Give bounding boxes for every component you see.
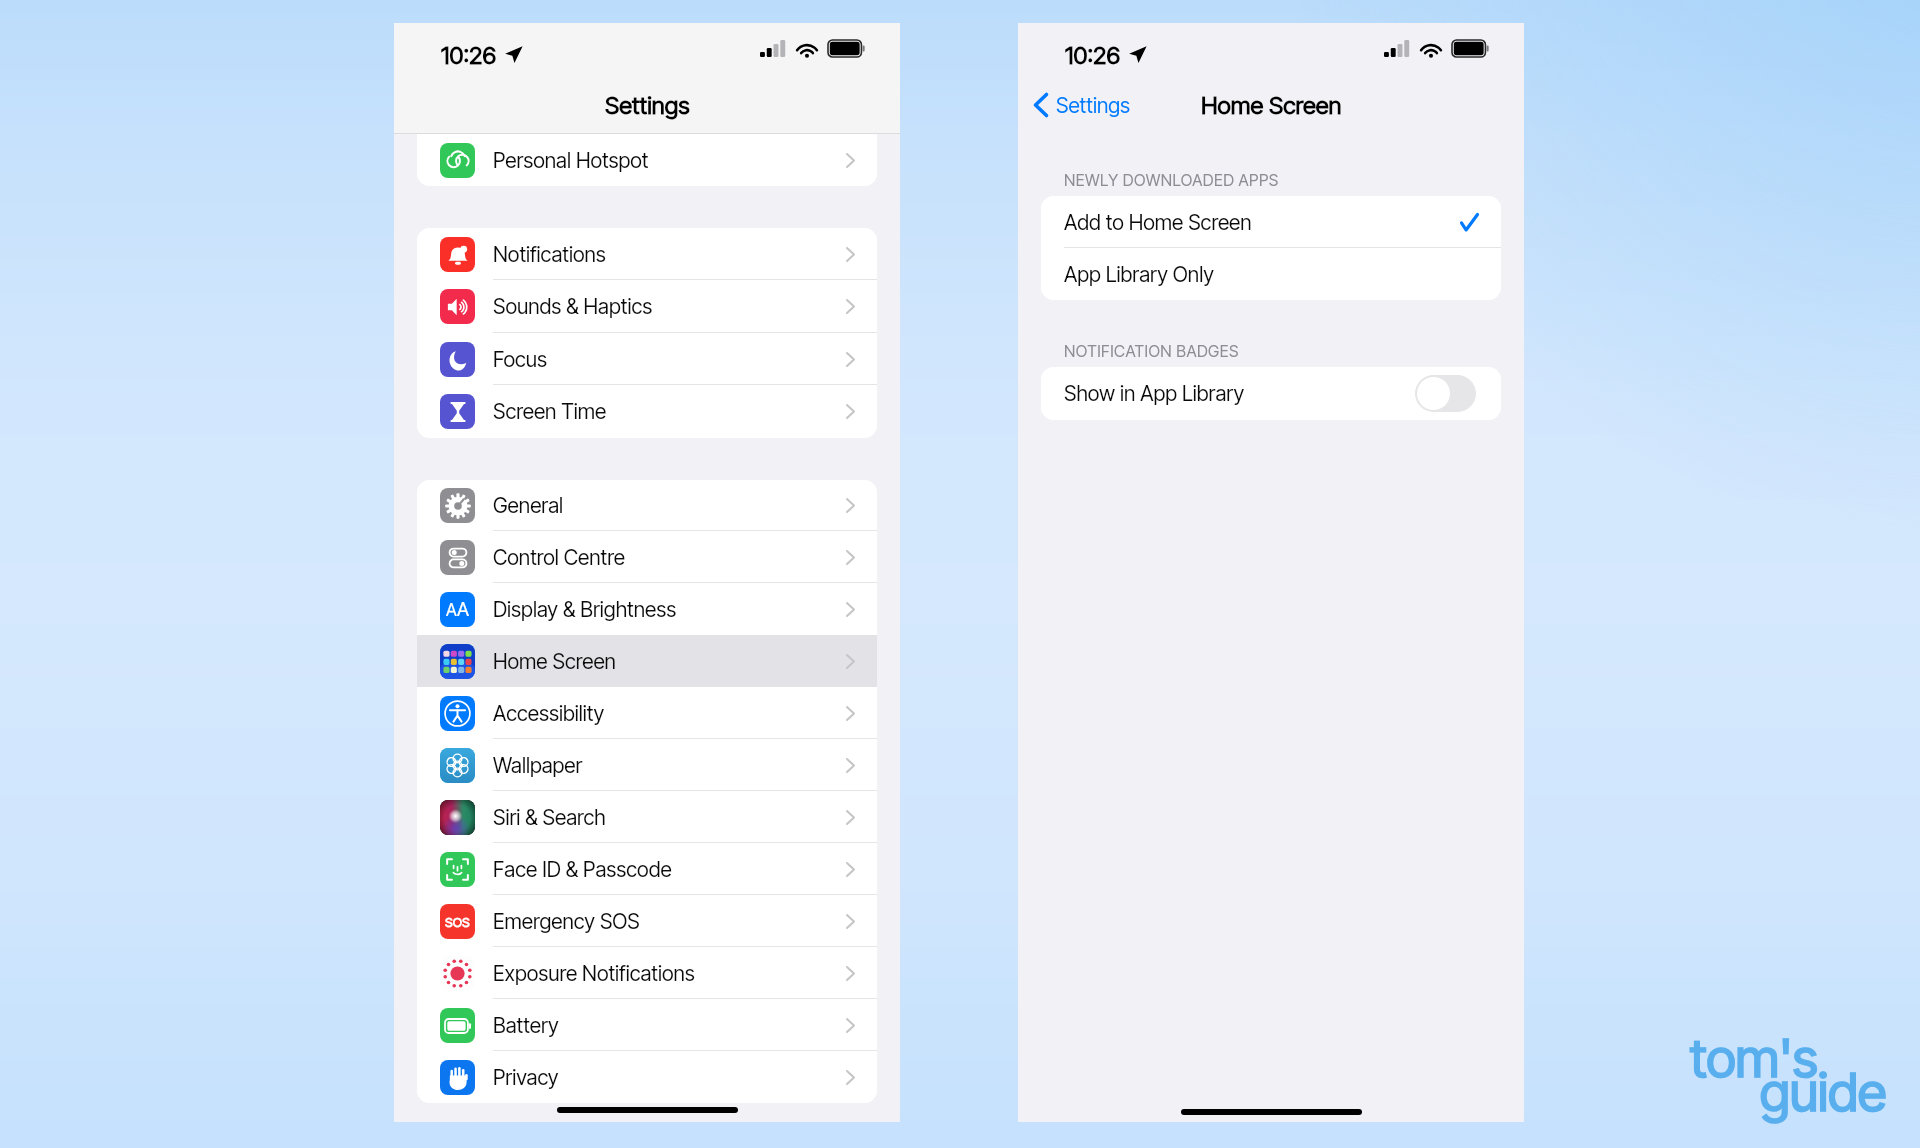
staticText: General (493, 493, 564, 518)
button[interactable]: Show in App Library (1041, 367, 1501, 420)
button[interactable]: Add to Home Screen (1041, 196, 1501, 248)
staticText: Sounds & Haptics (493, 294, 653, 319)
staticText: Notifications (493, 242, 606, 267)
button[interactable]: Focus (417, 333, 877, 385)
staticText: Display & Brightness (493, 597, 677, 622)
staticText: Siri & Search (493, 805, 606, 830)
staticText: Settings (605, 91, 690, 120)
staticText: Show in App Library (1064, 381, 1245, 406)
staticText: Battery (493, 1013, 559, 1038)
button[interactable]: Sounds & Haptics (417, 280, 877, 333)
staticText: Face ID & Passcode (493, 857, 672, 882)
button[interactable]: Exposure Notifications (417, 947, 877, 999)
button[interactable]: A (417, 583, 877, 635)
staticText: Home Screen (1201, 91, 1342, 120)
button[interactable]: App Library Only (1041, 248, 1501, 300)
button[interactable]: Control Centre (417, 531, 877, 583)
staticText: A (457, 598, 469, 621)
button[interactable]: Settings (1024, 83, 1141, 127)
staticText: App Library Only (1064, 262, 1214, 287)
staticText: NEWLY DOWNLOADED APPS (1064, 170, 1279, 189)
button[interactable]: General (417, 480, 877, 531)
staticText: NOTIFICATION BADGES (1064, 341, 1239, 360)
staticText: Wallpaper (493, 753, 583, 778)
staticText: Accessibility (493, 701, 605, 726)
staticText: Control Centre (493, 545, 625, 570)
staticText: A (446, 600, 457, 621)
staticText: Privacy (493, 1065, 559, 1090)
button[interactable]: Privacy (417, 1051, 877, 1103)
staticText: Settings (1056, 93, 1131, 118)
button[interactable]: Siri & Search (417, 791, 877, 843)
button[interactable]: Personal Hotspot (417, 134, 877, 186)
button[interactable]: Accessibility (417, 687, 877, 739)
button[interactable]: Screen Time (417, 385, 877, 438)
staticText: guide (1760, 1060, 1887, 1124)
staticText: Home Screen (493, 649, 616, 674)
button[interactable]: SOS (417, 895, 877, 947)
button[interactable]: Wallpaper (417, 739, 877, 791)
button[interactable]: Notifications (417, 228, 877, 280)
button[interactable]: Battery (417, 999, 877, 1051)
button[interactable]: Home Screen (417, 635, 877, 687)
staticText: Focus (493, 347, 548, 372)
staticText: Emergency SOS (493, 909, 640, 934)
staticText: 10:26 (441, 41, 497, 70)
staticText: SOS (445, 914, 470, 930)
button[interactable]: Show in App Library toggle (1415, 375, 1476, 412)
staticText: Screen Time (493, 399, 607, 424)
staticText: 10:26 (1065, 41, 1121, 70)
button[interactable]: Face ID & Passcode (417, 843, 877, 895)
staticText: Personal Hotspot (493, 148, 649, 173)
staticText: Add to Home Screen (1064, 210, 1252, 235)
staticText: tom's (1690, 1026, 1818, 1090)
staticText: Exposure Notifications (493, 961, 695, 986)
